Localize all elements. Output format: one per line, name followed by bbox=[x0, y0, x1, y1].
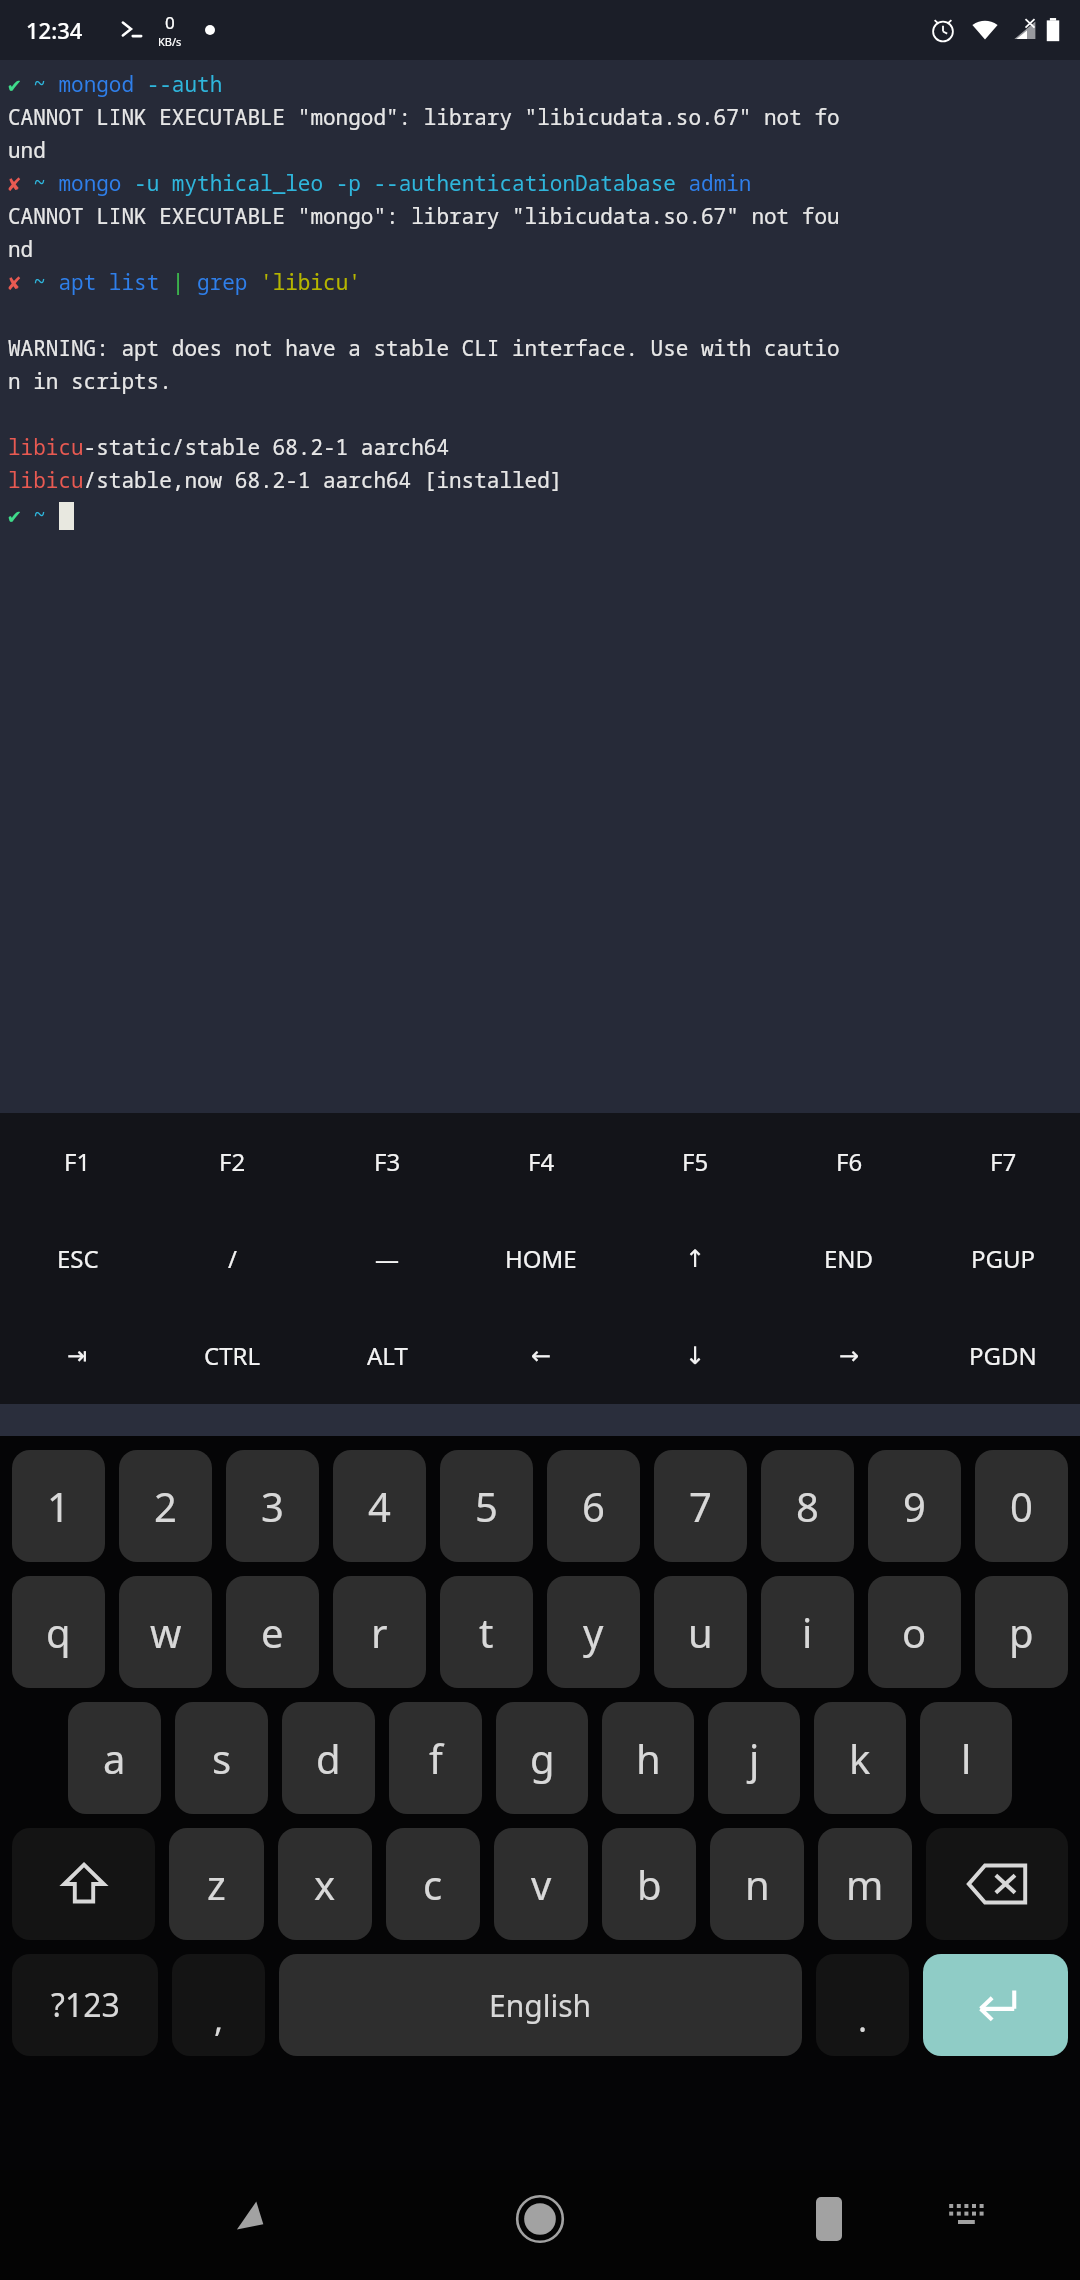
staticText: k bbox=[849, 1731, 871, 1785]
staticText: libicu/stable,now 68.2-1 aarch64 [instal… bbox=[8, 466, 563, 495]
button[interactable]: — bbox=[310, 1210, 464, 1307]
button[interactable]: w bbox=[119, 1576, 212, 1688]
button[interactable]: 5 bbox=[440, 1450, 533, 1562]
staticText: 9 bbox=[903, 1479, 926, 1533]
button[interactable]: c bbox=[386, 1828, 480, 1940]
button[interactable]: i bbox=[761, 1576, 854, 1688]
staticText: . bbox=[858, 1996, 868, 2042]
button[interactable]: CTRL bbox=[155, 1307, 310, 1404]
button[interactable]: l bbox=[920, 1702, 1012, 1814]
button[interactable]: d bbox=[282, 1702, 375, 1814]
staticText: ✔ ~ bbox=[8, 501, 59, 530]
staticText: ↑ bbox=[685, 1245, 706, 1273]
button[interactable]: 6 bbox=[547, 1450, 640, 1562]
button[interactable]: h bbox=[602, 1702, 694, 1814]
button[interactable]: Enter bbox=[923, 1954, 1068, 2056]
button[interactable]: ↓ bbox=[618, 1307, 772, 1404]
button[interactable]: F3 bbox=[310, 1113, 464, 1210]
button[interactable]: F5 bbox=[618, 1113, 772, 1210]
button[interactable]: F1 bbox=[0, 1113, 155, 1210]
staticText: c bbox=[423, 1857, 443, 1911]
button[interactable]: 3 bbox=[226, 1450, 319, 1562]
staticText: i bbox=[802, 1605, 813, 1659]
button[interactable]: z bbox=[169, 1828, 264, 1940]
button[interactable]: v bbox=[494, 1828, 588, 1940]
staticText: END bbox=[824, 1242, 874, 1275]
staticText: HOME bbox=[505, 1242, 577, 1275]
staticText: F6 bbox=[836, 1145, 863, 1178]
staticText: ↓ bbox=[685, 1342, 706, 1370]
button[interactable]: ↑ bbox=[618, 1210, 772, 1307]
button[interactable]: END bbox=[772, 1210, 926, 1307]
button[interactable]: F4 bbox=[464, 1113, 618, 1210]
button[interactable]: Backspace bbox=[926, 1828, 1068, 1940]
button[interactable]: 8 bbox=[761, 1450, 854, 1562]
staticText: 7 bbox=[689, 1479, 712, 1533]
button[interactable]: Hide keyboard bbox=[930, 2180, 1002, 2252]
button[interactable]: / bbox=[155, 1210, 310, 1307]
button[interactable]: ESC bbox=[0, 1210, 155, 1307]
button[interactable]: p bbox=[975, 1576, 1068, 1688]
button[interactable]: ← bbox=[464, 1307, 618, 1404]
button[interactable]: 2 bbox=[119, 1450, 212, 1562]
button[interactable]: k bbox=[814, 1702, 906, 1814]
button[interactable]: F2 bbox=[155, 1113, 310, 1210]
staticText: CANNOT LINK EXECUTABLE "mongod": library… bbox=[8, 103, 840, 132]
staticText: ⇥ bbox=[67, 1342, 88, 1370]
staticText: 0 bbox=[165, 11, 175, 34]
button[interactable]: q bbox=[12, 1576, 105, 1688]
button[interactable]: F7 bbox=[926, 1113, 1080, 1210]
staticText: ALT bbox=[367, 1339, 408, 1372]
button[interactable]: s bbox=[175, 1702, 268, 1814]
button[interactable]: ⇥ bbox=[0, 1307, 155, 1404]
staticText: / bbox=[228, 1242, 237, 1275]
staticText: h bbox=[636, 1731, 661, 1785]
button[interactable]: , bbox=[172, 1954, 265, 2056]
button[interactable]: y bbox=[547, 1576, 640, 1688]
staticText: F1 bbox=[64, 1145, 91, 1178]
button[interactable]: 0 bbox=[975, 1450, 1068, 1562]
button[interactable]: g bbox=[496, 1702, 588, 1814]
button[interactable]: F6 bbox=[772, 1113, 926, 1210]
staticText: F7 bbox=[990, 1145, 1017, 1178]
button[interactable]: m bbox=[818, 1828, 912, 1940]
button[interactable]: → bbox=[772, 1307, 926, 1404]
button[interactable]: f bbox=[389, 1702, 482, 1814]
button[interactable]: n bbox=[710, 1828, 804, 1940]
button[interactable]: English bbox=[279, 1954, 802, 2056]
button[interactable]: 9 bbox=[868, 1450, 961, 1562]
staticText: d bbox=[316, 1731, 341, 1785]
button[interactable]: PGDN bbox=[926, 1307, 1080, 1404]
button[interactable]: a bbox=[68, 1702, 161, 1814]
button[interactable]: 1 bbox=[12, 1450, 105, 1562]
staticText: o bbox=[902, 1605, 927, 1659]
staticText: a bbox=[103, 1731, 126, 1785]
button[interactable]: e bbox=[226, 1576, 319, 1688]
button[interactable]: r bbox=[333, 1576, 426, 1688]
button[interactable]: u bbox=[654, 1576, 747, 1688]
staticText: 0 bbox=[1010, 1479, 1033, 1533]
staticText: q bbox=[46, 1605, 71, 1659]
button[interactable]: t bbox=[440, 1576, 533, 1688]
button[interactable]: 4 bbox=[333, 1450, 426, 1562]
staticText: 4 bbox=[368, 1479, 391, 1533]
button[interactable]: Shift bbox=[12, 1828, 155, 1940]
button[interactable]: j bbox=[708, 1702, 800, 1814]
button[interactable]: o bbox=[868, 1576, 961, 1688]
button[interactable]: ?123 bbox=[12, 1954, 158, 2056]
staticText: nd bbox=[8, 235, 34, 264]
button[interactable]: Home bbox=[499, 2178, 581, 2260]
staticText: PGDN bbox=[969, 1339, 1037, 1372]
staticText: 6 bbox=[582, 1479, 605, 1533]
button[interactable]: 7 bbox=[654, 1450, 747, 1562]
button[interactable]: x bbox=[278, 1828, 372, 1940]
staticText: t bbox=[479, 1605, 494, 1659]
button[interactable]: . bbox=[816, 1954, 909, 2056]
button[interactable]: Back bbox=[210, 2178, 292, 2260]
button[interactable]: Recents bbox=[788, 2178, 870, 2260]
button[interactable]: PGUP bbox=[926, 1210, 1080, 1307]
button[interactable]: ALT bbox=[310, 1307, 464, 1404]
staticText: b bbox=[637, 1857, 662, 1911]
button[interactable]: b bbox=[602, 1828, 696, 1940]
button[interactable]: HOME bbox=[464, 1210, 618, 1307]
